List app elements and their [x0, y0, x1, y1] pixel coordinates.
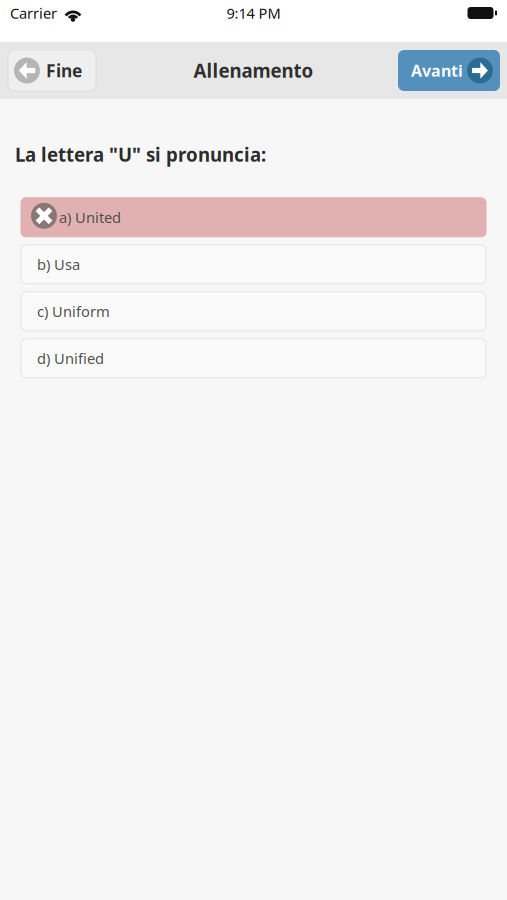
staticText: b) Usa: [37, 255, 80, 274]
button[interactable]: a) United: [21, 198, 486, 237]
button[interactable]: d) Unified: [21, 339, 486, 378]
button[interactable]: b) Usa: [21, 245, 486, 284]
staticText: Fine: [46, 59, 82, 82]
staticText: Allenamento: [193, 58, 313, 83]
button[interactable]: c) Uniform: [21, 292, 486, 331]
staticText: Avanti: [411, 60, 463, 81]
button[interactable]: Avanti: [398, 50, 500, 91]
staticText: d) Unified: [37, 349, 104, 368]
staticText: 9:14 PM: [226, 3, 280, 23]
button[interactable]: Fine: [8, 50, 96, 91]
staticText: Carrier: [10, 3, 57, 23]
staticText: c) Uniform: [37, 302, 110, 321]
staticText: La lettera "U" si pronuncia:: [15, 142, 266, 167]
staticText: a) United: [59, 208, 121, 227]
